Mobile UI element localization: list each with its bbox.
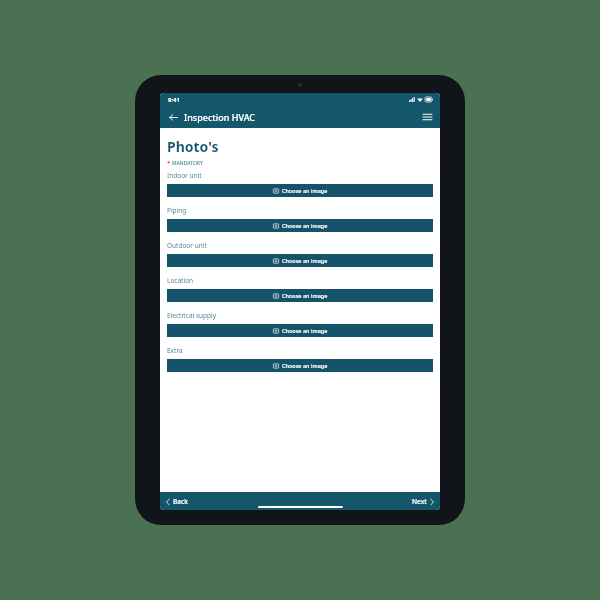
staticText: 9:41	[168, 96, 180, 104]
button[interactable]: Back	[166, 110, 256, 124]
staticText: Choose an image	[282, 257, 328, 264]
button[interactable]: Choose an image	[167, 184, 433, 197]
staticText: Choose an image	[282, 327, 328, 334]
staticText: Back	[173, 497, 188, 506]
staticText: Choose an image	[282, 222, 328, 229]
staticText: Electrical supply	[167, 311, 217, 320]
staticText: Piping	[167, 206, 187, 215]
staticText: Extra	[167, 346, 183, 355]
staticText: Inspection HVAC	[184, 111, 256, 123]
button[interactable]: Choose an image	[167, 359, 433, 372]
staticText: Choose an image	[282, 292, 328, 299]
staticText: Next	[412, 497, 427, 506]
button[interactable]: Next	[412, 497, 434, 506]
button[interactable]: Choose an image	[167, 219, 433, 232]
button[interactable]: Menu	[420, 110, 434, 124]
other: Back	[166, 110, 180, 124]
staticText: Photo's	[167, 137, 219, 156]
staticText: Indoor unit	[167, 171, 202, 180]
staticText: Outdoor unit	[167, 241, 207, 250]
button[interactable]: Choose an image	[167, 289, 433, 302]
staticText: *	[167, 159, 171, 167]
staticText: MANDATORY	[172, 160, 203, 167]
staticText: Location	[167, 276, 194, 285]
button[interactable]: Back	[166, 497, 188, 506]
button[interactable]: Choose an image	[167, 254, 433, 267]
button[interactable]: Choose an image	[167, 324, 433, 337]
staticText: Choose an image	[282, 362, 328, 369]
staticText: Choose an image	[282, 187, 328, 194]
